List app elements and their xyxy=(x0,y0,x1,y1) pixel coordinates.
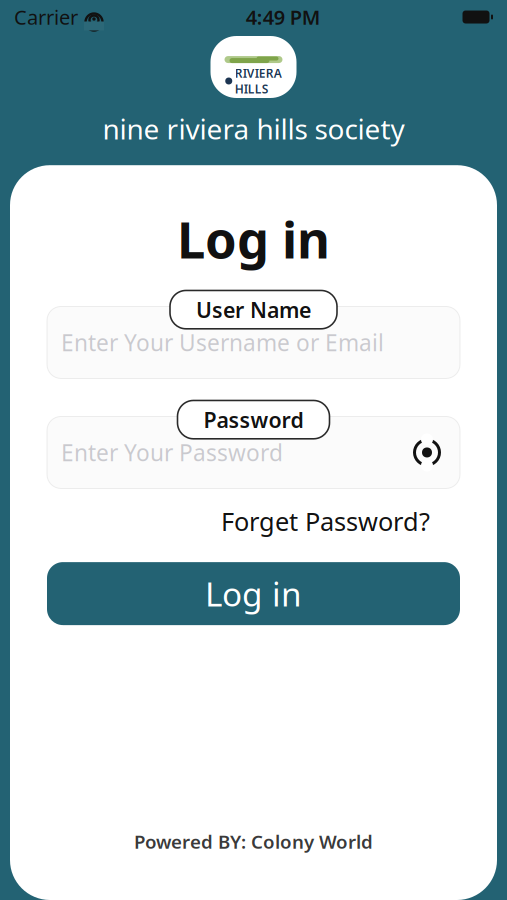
button[interactable]: Forget Password? xyxy=(221,504,430,538)
staticText: Log in xyxy=(177,205,330,272)
staticText: User Name xyxy=(196,295,311,324)
staticText: Carrier xyxy=(14,4,78,30)
button[interactable]: Show password xyxy=(408,437,446,467)
staticText: Powered BY: Colony World xyxy=(134,829,373,854)
staticText: Enter Your Password xyxy=(61,437,283,467)
staticText: Forget Password? xyxy=(221,504,430,538)
button[interactable]: Log in xyxy=(47,562,460,625)
staticText: RIVIERA HILLS xyxy=(235,65,282,97)
staticText: Password xyxy=(203,405,303,434)
staticText: nine riviera hills society xyxy=(102,110,404,147)
staticText: 4:49 PM xyxy=(246,4,321,30)
staticText: Log in xyxy=(205,571,302,616)
staticText: Enter Your Username or Email xyxy=(61,327,384,357)
